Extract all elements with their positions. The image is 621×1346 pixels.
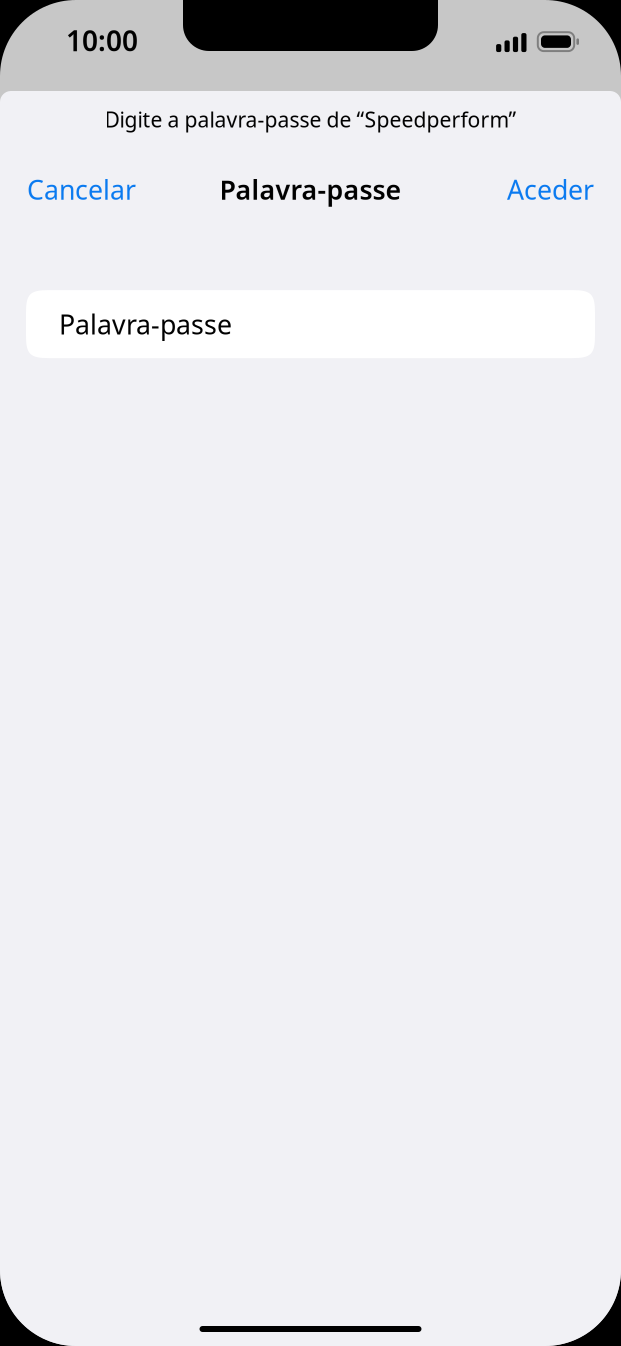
button[interactable]: Aceder bbox=[507, 172, 594, 207]
button[interactable]: Palavra-passe bbox=[26, 290, 595, 358]
button[interactable]: Cancelar bbox=[27, 172, 136, 207]
staticText: Palavra-passe bbox=[59, 306, 232, 342]
staticText: Cancelar bbox=[27, 172, 136, 207]
staticText: 10:00 bbox=[66, 22, 138, 59]
staticText: Palavra-passe bbox=[219, 172, 401, 207]
staticText: Digite a palavra-passe de “Speedperform” bbox=[104, 105, 516, 134]
staticText: Aceder bbox=[507, 172, 594, 207]
